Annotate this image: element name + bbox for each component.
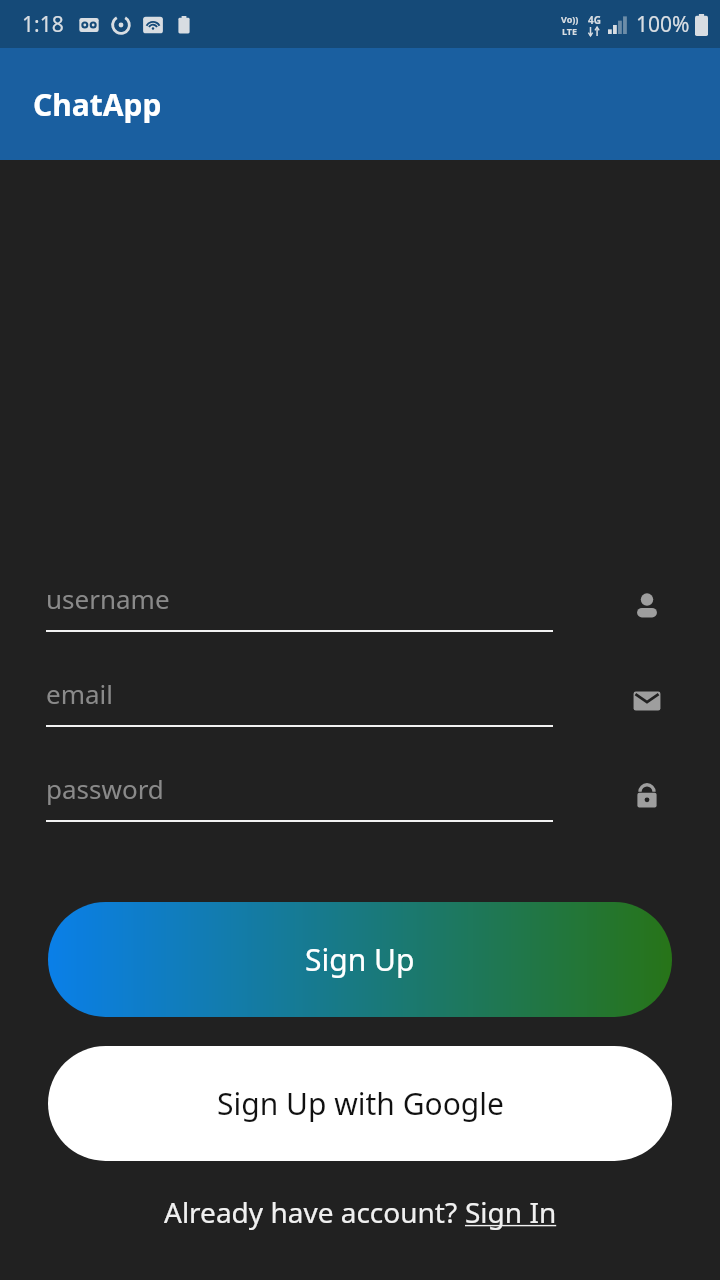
other: Password — [630, 779, 664, 813]
other: Email — [630, 684, 664, 718]
staticText: 4G — [588, 13, 601, 27]
staticText: LTE — [562, 25, 578, 37]
button[interactable]: password — [0, 765, 720, 827]
staticText: Vo)) — [561, 13, 579, 25]
staticText: 1:18 — [22, 10, 64, 39]
staticText: Sign Up — [305, 939, 415, 980]
staticText: Already have account? — [164, 1193, 465, 1231]
button[interactable]: Sign Up with Google — [48, 1046, 672, 1161]
staticText: email — [46, 676, 113, 711]
staticText: username — [46, 581, 170, 616]
staticText: ChatApp — [33, 84, 162, 125]
staticText: Sign In — [465, 1193, 557, 1231]
other: Username — [630, 589, 664, 623]
staticText: Sign Up with Google — [217, 1083, 504, 1124]
button[interactable]: email — [0, 670, 720, 732]
button[interactable]: Sign In — [465, 1193, 557, 1231]
button[interactable]: username — [0, 575, 720, 637]
button[interactable]: Sign Up — [48, 902, 672, 1017]
staticText: password — [46, 771, 164, 806]
staticText: 100% — [636, 10, 690, 39]
